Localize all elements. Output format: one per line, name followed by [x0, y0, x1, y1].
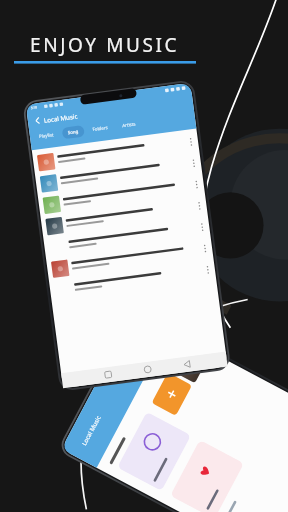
button[interactable]: Enjoy Music promo screen	[0, 0, 288, 512]
